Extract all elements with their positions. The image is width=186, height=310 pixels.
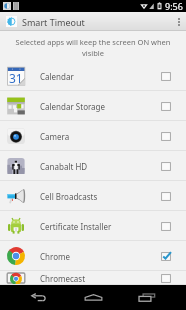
staticText: Certificate Installer: [40, 221, 112, 232]
staticText: Chrome: [40, 251, 70, 262]
button[interactable]: Chromecast: [0, 271, 186, 285]
staticText: Calendar: [40, 71, 74, 82]
staticText: Smart Timeout: [22, 16, 85, 28]
button[interactable]: Recents: [131, 285, 162, 310]
staticText: Canabalt HD: [40, 161, 88, 172]
button[interactable]: Calendar Storage: [0, 91, 186, 121]
staticText: Cell Broadcasts: [40, 191, 98, 202]
button[interactable]: 31: [0, 61, 186, 91]
button[interactable]: Cell Broadcasts: [0, 181, 186, 211]
button[interactable]: Back: [23, 285, 54, 310]
button[interactable]: Camera: [0, 121, 186, 151]
button[interactable]: Canabalt HD: [0, 151, 186, 181]
staticText: Selected apps will keep the screen ON wh…: [6, 37, 180, 58]
button[interactable]: Chrome: [0, 241, 186, 271]
staticText: Calendar Storage: [40, 101, 106, 112]
staticText: 9:56: [165, 0, 183, 12]
staticText: Chromecast: [40, 273, 86, 284]
button[interactable]: More options: [172, 12, 186, 31]
staticText: 31: [9, 70, 23, 86]
staticText: Camera: [40, 131, 70, 142]
button[interactable]: Home: [78, 285, 109, 310]
button[interactable]: Certificate Installer: [0, 211, 186, 241]
